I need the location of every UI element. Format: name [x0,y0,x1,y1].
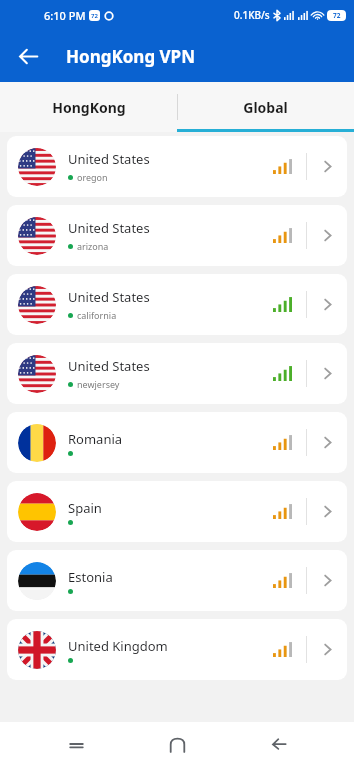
button[interactable]: Spain [7,481,347,542]
staticText: Spain [68,499,102,517]
button[interactable]: United States [7,274,347,335]
staticText: United States [68,288,150,306]
button[interactable]: United Kingdom [7,619,347,680]
button[interactable]: Home [151,722,203,768]
staticText: United Kingdom [68,637,168,655]
staticText: newjersey [77,378,120,390]
staticText: oregon [77,171,108,183]
staticText: HongKong [52,98,126,117]
button[interactable]: United States [7,205,347,266]
staticText: Romania [68,430,123,448]
staticText: HongKong VPN [66,45,195,68]
button[interactable]: Back [253,722,305,768]
button[interactable]: United States [7,136,347,197]
staticText: Global [243,98,288,117]
staticText: arizona [77,240,109,252]
staticText: United States [68,357,150,375]
button[interactable]: Back [8,36,48,76]
staticText: United States [68,219,150,237]
staticText: 72 [91,12,98,20]
button[interactable]: Estonia [7,550,347,611]
staticText: 0.1KB/s [234,8,270,22]
button[interactable]: HongKong [0,82,177,132]
staticText: 72 [333,11,341,20]
button[interactable]: Recents [50,722,102,768]
staticText: Estonia [68,568,113,586]
staticText: california [77,309,117,321]
button[interactable]: Romania [7,412,347,473]
staticText: United States [68,150,150,168]
button[interactable]: United States [7,343,347,404]
button[interactable]: Global [177,82,354,132]
staticText: 6:10 PM [44,8,86,23]
